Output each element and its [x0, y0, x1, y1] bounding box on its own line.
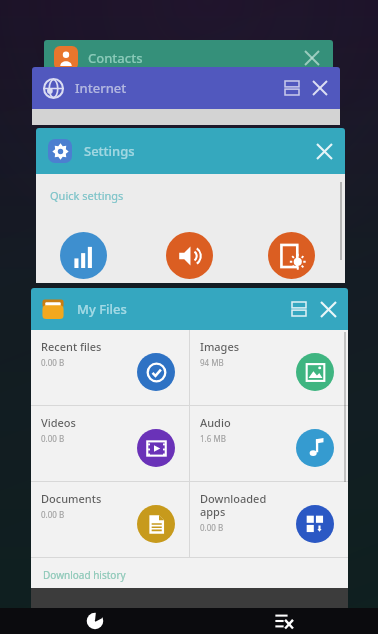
staticText: Downloaded apps	[200, 491, 267, 519]
button[interactable]: Close all	[189, 608, 378, 634]
button[interactable]: Videos	[31, 406, 189, 481]
button[interactable]: Close My Files	[313, 294, 343, 324]
staticText: Internet	[75, 79, 127, 97]
button[interactable]	[166, 232, 213, 279]
button[interactable]: Close Contacts	[297, 43, 327, 73]
staticText: Images	[200, 339, 240, 354]
button[interactable]: Settings	[36, 128, 345, 283]
staticText: Audio	[200, 415, 231, 430]
staticText: Documents	[41, 491, 102, 506]
button[interactable]	[268, 232, 315, 279]
staticText: Videos	[41, 415, 76, 430]
staticText: 0.00 B	[200, 522, 224, 533]
staticText: 1.6 MB	[200, 433, 226, 444]
button[interactable]: Recent files	[31, 330, 189, 405]
staticText: My Files	[77, 300, 127, 318]
button[interactable]: Close Internet	[306, 74, 334, 102]
button[interactable]: Multi window	[278, 74, 306, 102]
button[interactable]: Contacts	[44, 40, 333, 100]
button[interactable]: Internet	[32, 67, 340, 125]
staticText: Quick settings	[50, 188, 124, 203]
staticText: Recent files	[41, 339, 102, 354]
staticText: 0.00 B	[41, 433, 65, 444]
staticText: Contacts	[88, 49, 143, 67]
button[interactable]: Recent apps	[0, 608, 189, 634]
button[interactable]	[60, 232, 107, 279]
staticText: Download history	[43, 568, 126, 582]
button[interactable]: Documents	[31, 482, 189, 557]
staticText: 0.00 B	[41, 357, 65, 368]
staticText: Settings	[84, 142, 135, 160]
button[interactable]: Images	[190, 330, 348, 405]
staticText: 94 MB	[200, 357, 224, 368]
staticText: 0.00 B	[41, 509, 65, 520]
button[interactable]: My Files	[31, 288, 348, 608]
button[interactable]: Close Settings	[309, 136, 339, 166]
button[interactable]: Downloaded apps	[190, 482, 348, 557]
button[interactable]: Audio	[190, 406, 348, 481]
button[interactable]: Multi window	[285, 295, 313, 323]
